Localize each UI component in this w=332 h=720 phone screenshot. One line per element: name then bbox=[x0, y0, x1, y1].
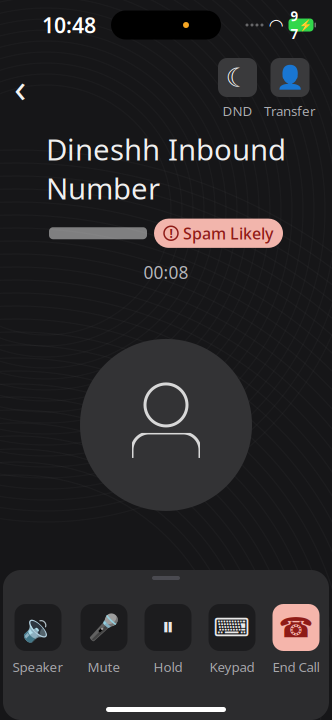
staticText: ◠ bbox=[269, 15, 282, 35]
staticText: Keypad bbox=[209, 658, 254, 676]
button[interactable]: 👤 bbox=[264, 58, 316, 120]
staticText: ⏸ bbox=[161, 615, 174, 640]
staticText: ⚡ bbox=[298, 19, 311, 31]
staticText: 10:48 bbox=[42, 11, 96, 39]
button[interactable]: ☎ bbox=[272, 604, 319, 676]
staticText: ⌨ bbox=[213, 613, 250, 642]
staticText: Hold bbox=[153, 658, 182, 676]
staticText: End Call bbox=[272, 658, 319, 676]
button[interactable]: ☾ bbox=[218, 58, 257, 120]
button[interactable]: ⌨ bbox=[208, 604, 255, 676]
staticText: 🔉 bbox=[21, 612, 54, 643]
staticText: Dineshh Inbound Number bbox=[46, 130, 286, 208]
staticText: ‹ bbox=[14, 60, 26, 113]
staticText: Mute bbox=[87, 658, 120, 676]
staticText: Speaker bbox=[12, 658, 63, 676]
staticText: 97 bbox=[290, 7, 298, 43]
staticText: Spam Likely bbox=[183, 223, 273, 244]
staticText: 00:08 bbox=[143, 261, 188, 284]
staticText: DND bbox=[222, 102, 252, 120]
staticText: ☎ bbox=[278, 612, 313, 643]
staticText: 🎤 bbox=[88, 613, 120, 642]
staticText: ☾ bbox=[225, 62, 249, 93]
staticText: ! bbox=[169, 225, 172, 241]
button[interactable]: 🎤 bbox=[80, 604, 127, 676]
staticText: Transfer bbox=[264, 102, 316, 120]
button[interactable]: Back bbox=[0, 58, 40, 116]
staticText: 👤 bbox=[276, 65, 304, 90]
button[interactable]: ⏸ bbox=[144, 604, 191, 676]
button[interactable]: 🔉 bbox=[12, 604, 63, 676]
